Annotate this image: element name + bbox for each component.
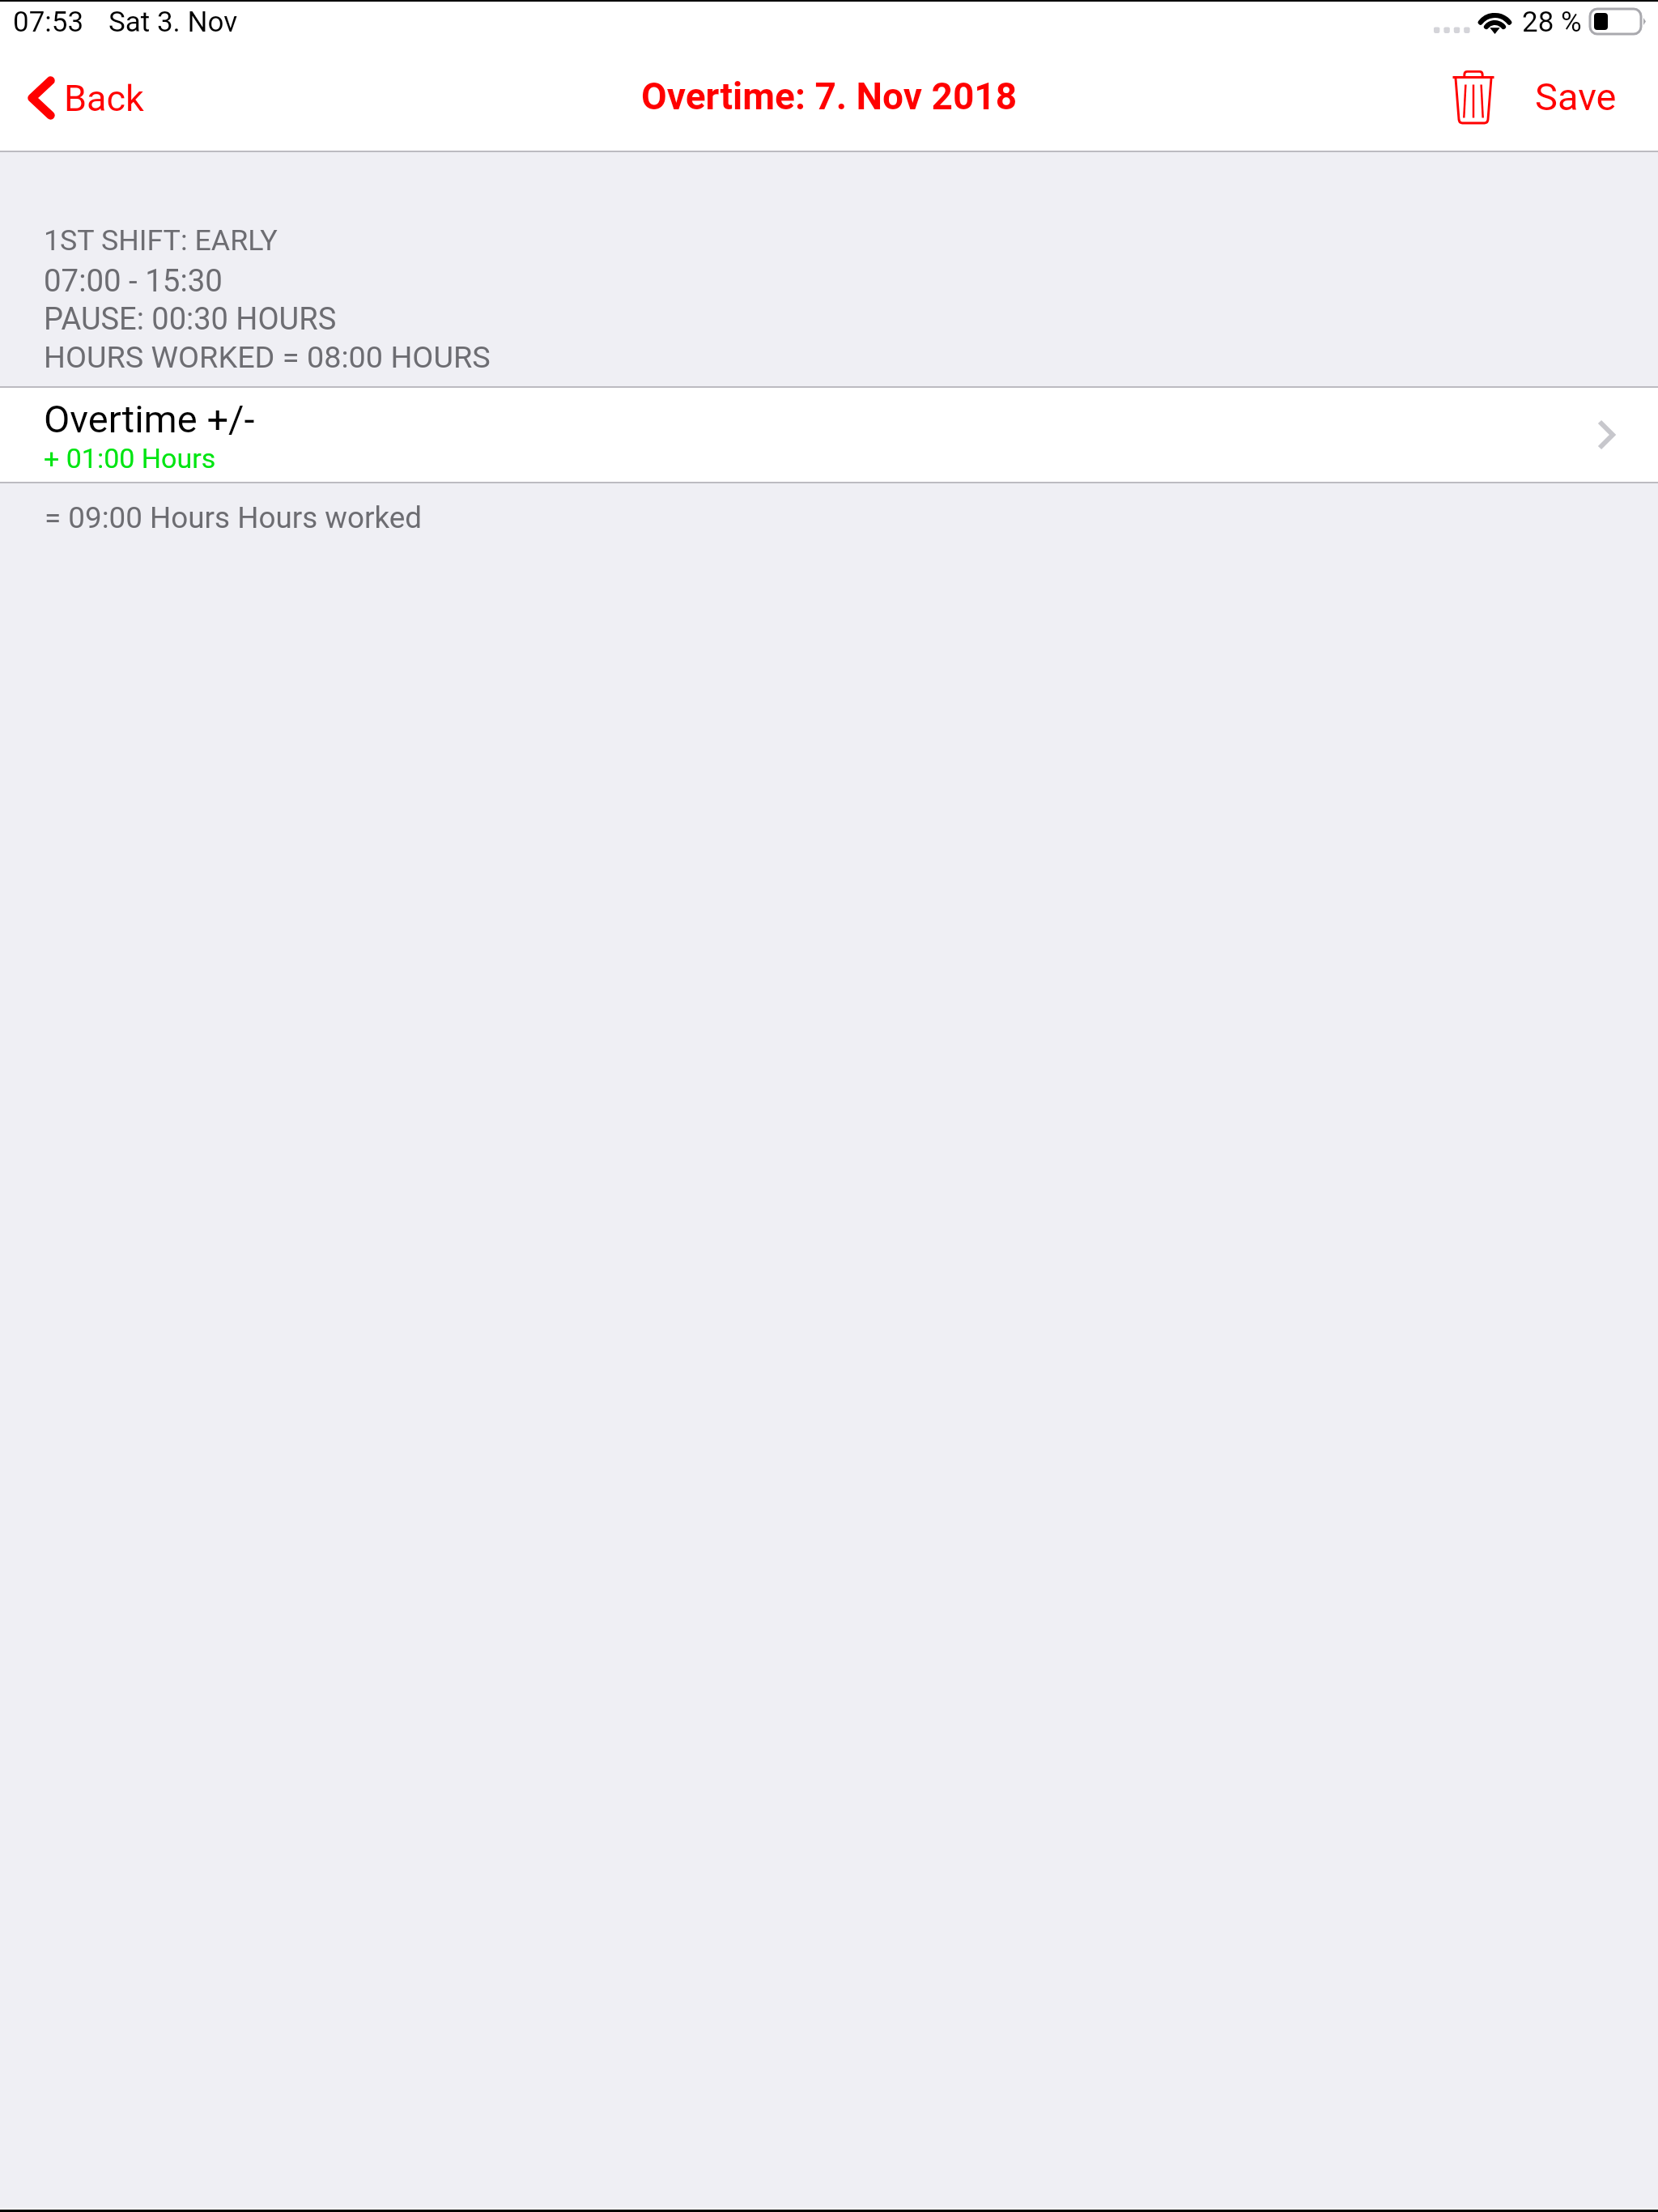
button[interactable]: Back xyxy=(15,57,144,142)
staticText: Overtime: 7. Nov 2018 xyxy=(641,74,1018,118)
staticText: Overtime +/- xyxy=(44,397,255,441)
staticText: Save xyxy=(1535,74,1617,119)
staticText: + 01:00 Hours xyxy=(44,442,216,474)
staticText: 07:00 - 15:30 xyxy=(44,262,223,299)
staticText: 1ST SHIFT: EARLY xyxy=(44,223,278,257)
staticText: 07:53 xyxy=(13,6,84,39)
button[interactable]: Delete xyxy=(1431,53,1516,141)
staticText: = 09:00 Hours Hours worked xyxy=(45,500,422,535)
staticText: Sat 3. Nov xyxy=(108,6,238,39)
button[interactable]: Overtime +/- xyxy=(0,388,1658,483)
button[interactable]: Save xyxy=(1519,53,1632,141)
staticText: PAUSE: 00:30 HOURS xyxy=(44,301,337,338)
staticText: 28 % xyxy=(1522,6,1582,39)
staticText: HOURS WORKED = 08:00 HOURS xyxy=(44,339,491,375)
staticText: Back xyxy=(64,77,144,120)
